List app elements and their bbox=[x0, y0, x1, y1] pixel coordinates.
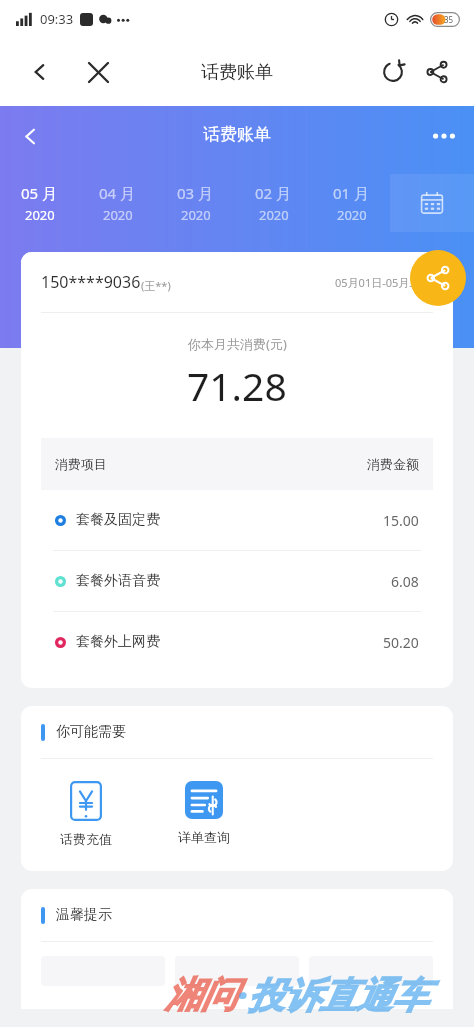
button[interactable]: More options bbox=[426, 118, 462, 154]
staticText: 15.00 bbox=[383, 511, 419, 530]
button[interactable]: 05 月 bbox=[0, 174, 78, 232]
staticText: 详单查询 bbox=[178, 829, 230, 845]
button[interactable]: Share bill bbox=[410, 250, 466, 306]
staticText: 05月01日-05月31日 bbox=[335, 275, 433, 290]
staticText: 6.08 bbox=[391, 572, 419, 591]
button[interactable]: Pick month bbox=[390, 174, 474, 232]
staticText: 消费项目 bbox=[55, 456, 107, 472]
button[interactable]: 03 月 bbox=[156, 174, 234, 232]
staticText: 消费金额 bbox=[367, 456, 419, 472]
button[interactable]: Refresh bbox=[374, 53, 412, 91]
staticText: 71.28 bbox=[187, 359, 287, 412]
staticText: 套餐外语音费 bbox=[76, 572, 160, 590]
button[interactable]: 详单查询 bbox=[165, 781, 243, 845]
staticText: 你可能需要 bbox=[56, 723, 126, 741]
staticText: 35 bbox=[444, 14, 454, 25]
staticText: 湘问 bbox=[165, 972, 237, 1017]
button[interactable]: 套餐及固定费 bbox=[21, 490, 453, 550]
staticText: 02 月 bbox=[255, 183, 292, 203]
staticText: 09:33 bbox=[40, 10, 74, 28]
button[interactable]: 02 月 bbox=[234, 174, 312, 232]
staticText: 你本月共消费(元) bbox=[188, 335, 287, 353]
staticText: 套餐外上网费 bbox=[76, 633, 160, 651]
staticText: 2020 bbox=[25, 206, 55, 224]
staticText: ·投诉直通车 bbox=[237, 970, 429, 1019]
staticText: 150****9036 bbox=[41, 271, 141, 293]
button[interactable]: 话费充值 bbox=[47, 781, 125, 847]
button[interactable]: Close bbox=[80, 54, 116, 90]
staticText: 2020 bbox=[103, 206, 133, 224]
button[interactable]: 01 月 bbox=[312, 174, 390, 232]
staticText: 50.20 bbox=[383, 633, 419, 652]
staticText: 话费账单 bbox=[203, 124, 271, 145]
staticText: 话费账单 bbox=[201, 61, 273, 84]
staticText: 2020 bbox=[181, 206, 211, 224]
staticText: 2020 bbox=[337, 206, 367, 224]
button[interactable]: Share bbox=[418, 53, 456, 91]
staticText: 05 月 bbox=[21, 183, 58, 203]
staticText: 04 月 bbox=[99, 183, 136, 203]
staticText: 温馨提示 bbox=[56, 906, 112, 924]
staticText: 01 月 bbox=[333, 183, 370, 203]
button[interactable]: 套餐外语音费 bbox=[21, 550, 453, 611]
button[interactable]: Back bbox=[22, 54, 58, 90]
staticText: 话费充值 bbox=[60, 831, 112, 847]
button[interactable]: 04 月 bbox=[78, 174, 156, 232]
staticText: (王**) bbox=[141, 278, 171, 293]
staticText: 03 月 bbox=[177, 183, 214, 203]
button[interactable]: Back bbox=[10, 116, 50, 156]
staticText: 套餐及固定费 bbox=[76, 511, 160, 529]
button[interactable]: 套餐外上网费 bbox=[21, 611, 453, 672]
staticText: 2020 bbox=[259, 206, 289, 224]
